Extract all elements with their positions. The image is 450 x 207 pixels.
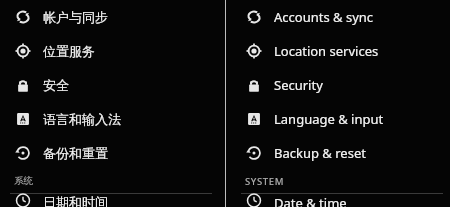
button[interactable]: Language & input bbox=[227, 102, 450, 136]
button[interactable]: 安全 bbox=[0, 68, 224, 102]
button[interactable]: Security bbox=[227, 68, 450, 102]
button[interactable]: 语言和输入法 bbox=[0, 102, 224, 136]
staticText: 帐户与同步 bbox=[43, 9, 108, 25]
staticText: Backup & reset bbox=[274, 144, 366, 162]
button[interactable]: 帐户与同步 bbox=[0, 0, 224, 34]
button[interactable]: Location services bbox=[227, 34, 450, 68]
button[interactable]: 备份和重置 bbox=[0, 136, 224, 170]
staticText: 日期和时间 bbox=[43, 194, 108, 207]
staticText: 系统 bbox=[14, 175, 33, 187]
button[interactable]: Accounts & sync bbox=[227, 0, 450, 34]
staticText: Date & time bbox=[274, 194, 347, 207]
staticText: Accounts & sync bbox=[274, 8, 374, 26]
staticText: Location services bbox=[274, 42, 379, 60]
button[interactable]: 日期和时间 bbox=[0, 194, 224, 207]
staticText: Security bbox=[274, 76, 323, 94]
button[interactable]: Date & time bbox=[227, 194, 450, 207]
button[interactable]: Backup & reset bbox=[227, 136, 450, 170]
staticText: SYSTEM bbox=[245, 175, 284, 188]
staticText: Language & input bbox=[274, 110, 384, 128]
staticText: 备份和重置 bbox=[43, 145, 108, 161]
staticText: 位置服务 bbox=[43, 43, 95, 59]
staticText: 语言和输入法 bbox=[43, 111, 121, 127]
staticText: 安全 bbox=[43, 77, 69, 93]
button[interactable]: 位置服务 bbox=[0, 34, 224, 68]
